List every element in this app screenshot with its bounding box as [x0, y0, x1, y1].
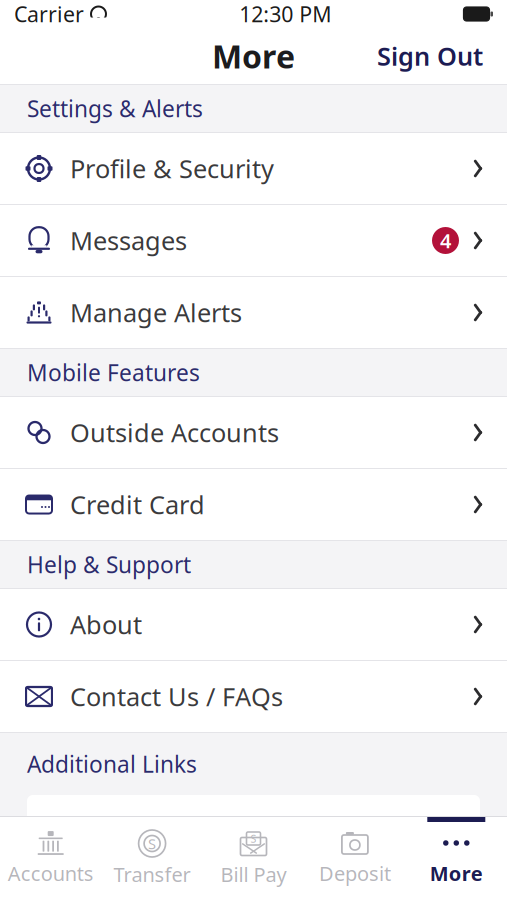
staticText: Help & Support: [27, 549, 191, 579]
staticText: Settings & Alerts: [27, 93, 203, 123]
staticText: Messages: [70, 224, 187, 257]
button[interactable]: More: [406, 817, 507, 900]
staticText: 12:30 PM: [239, 0, 331, 28]
staticText: Additional Links: [27, 749, 197, 779]
staticText: Manage Alerts: [70, 296, 242, 329]
button[interactable]: Messages: [0, 205, 507, 277]
staticText: Carrier: [14, 0, 84, 28]
staticText: Credit Card: [70, 488, 205, 521]
staticText: Mobile Features: [27, 357, 200, 387]
staticText: Transfer: [114, 861, 191, 888]
button[interactable]: Sign Out: [367, 31, 493, 81]
button[interactable]: Profile & Security: [0, 133, 507, 205]
button[interactable]: Manage Alerts: [0, 277, 507, 349]
button[interactable]: [0, 795, 507, 835]
staticText: Profile & Security: [70, 152, 274, 185]
button[interactable]: Contact Us / FAQs: [0, 661, 507, 733]
staticText: Contact Us / FAQs: [70, 680, 283, 713]
staticText: S: [148, 834, 156, 853]
staticText: Accounts: [8, 860, 94, 887]
staticText: About: [70, 608, 142, 641]
staticText: 4: [440, 227, 451, 254]
button[interactable]: Deposit: [304, 817, 406, 900]
button[interactable]: S: [203, 817, 304, 900]
button[interactable]: Credit Card: [0, 469, 507, 541]
staticText: S: [250, 831, 256, 846]
button[interactable]: About: [0, 589, 507, 661]
staticText: Deposit: [319, 860, 391, 887]
staticText: Sign Out: [377, 39, 483, 73]
button[interactable]: Accounts: [0, 817, 101, 900]
staticText: Outside Accounts: [70, 416, 279, 449]
button[interactable]: S: [101, 817, 203, 900]
staticText: More: [430, 860, 483, 887]
staticText: Bill Pay: [220, 861, 286, 888]
button[interactable]: Outside Accounts: [0, 397, 507, 469]
staticText: More: [212, 35, 295, 77]
